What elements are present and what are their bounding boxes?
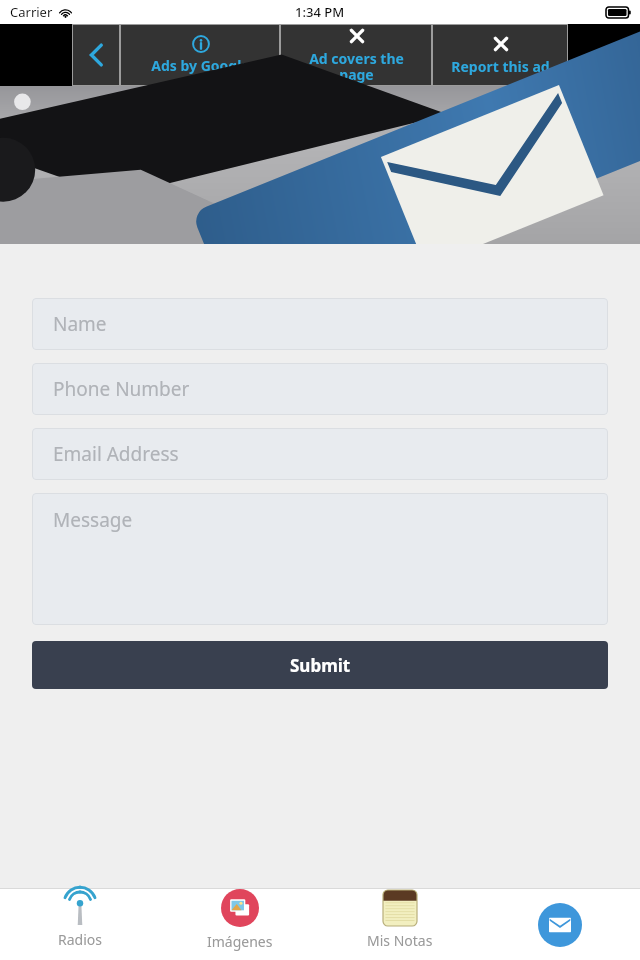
staticText: Imágenes [207,932,273,951]
button[interactable]: Report this ad [432,24,568,86]
staticText: Name [53,311,107,337]
staticText: Ad covers the page [309,49,404,84]
button[interactable]: Back [72,24,120,86]
staticText: Submit [290,654,351,677]
staticText: 1:34 PM [295,3,345,21]
staticText: Radios [58,930,102,949]
button[interactable]: Correo [480,889,640,960]
staticText: e job! You're displaying a 320 x 50 [112,34,377,56]
button[interactable]: Radios [0,889,160,960]
button[interactable]: Message [32,493,608,625]
button[interactable]: Ads by Google [120,24,280,86]
button[interactable]: Mis Notas [320,889,480,960]
button[interactable]: Email Address [32,428,608,480]
button[interactable]: Submit [32,641,608,689]
staticText: Phone Number [53,376,190,402]
button[interactable]: Ad covers the page [280,24,432,86]
staticText: Report this ad [451,57,550,76]
staticText: Message [53,507,133,533]
button[interactable]: Name [32,298,608,350]
button[interactable]: Imágenes [160,889,320,960]
button[interactable]: Phone Number [32,363,608,415]
staticText: Mis Notas [367,931,433,950]
staticText: Ads by Google [151,56,250,75]
staticText: Email Address [53,441,179,467]
staticText: Carrier [10,3,53,21]
